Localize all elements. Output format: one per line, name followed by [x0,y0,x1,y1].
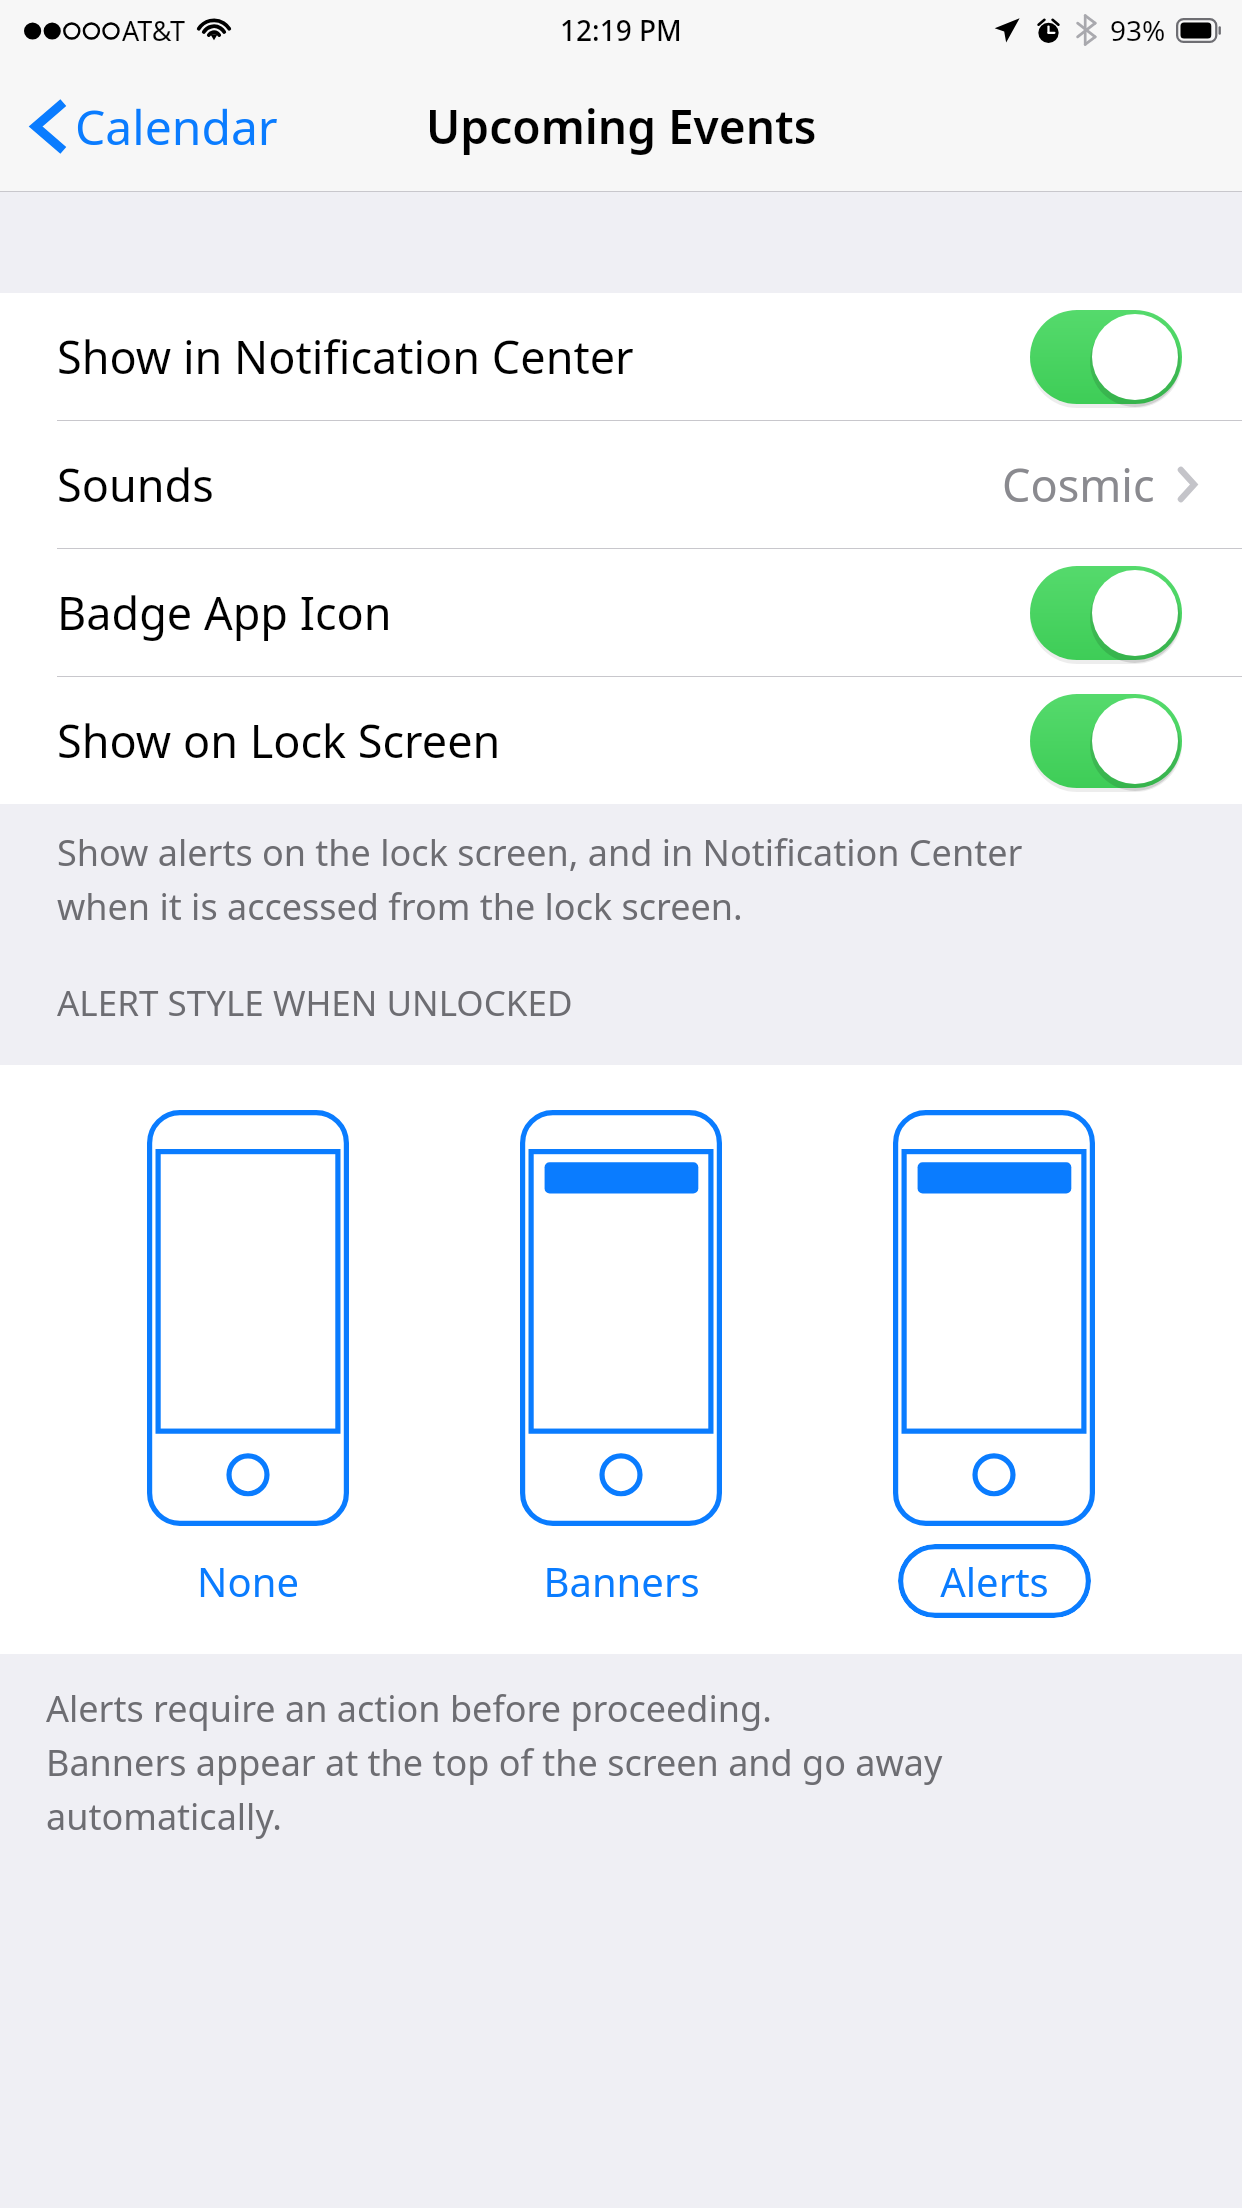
button[interactable]: Alerts [869,1110,1119,1618]
button[interactable]: None [123,1110,373,1618]
staticText: Calendar [75,94,278,159]
button[interactable]: Sounds [0,421,1242,548]
staticText: Show in Notification Center [57,326,1030,387]
staticText: ALERT STYLE WHEN UNLOCKED [57,979,573,1027]
staticText: 93% [1110,11,1166,49]
staticText: Show alerts on the lock screen, and in N… [57,828,1023,931]
button[interactable]: Badge App Icon [0,549,1242,676]
button[interactable]: Toggle on [1030,310,1182,404]
staticText: Badge App Icon [57,582,1030,643]
button[interactable]: Toggle on [1030,694,1182,788]
staticText: 12:19 PM [560,11,682,49]
button[interactable]: Show in Notification Center [0,293,1242,420]
staticText: Upcoming Events [426,95,817,158]
button[interactable]: Toggle on [1030,566,1182,660]
staticText: Show on Lock Screen [57,710,1030,771]
button[interactable]: Banners [496,1110,746,1618]
staticText: Banners [543,1554,700,1608]
staticText: Sounds [57,454,1002,515]
staticText: Cosmic [1002,454,1155,515]
staticText: None [197,1554,299,1608]
button[interactable]: Show on Lock Screen [0,677,1242,804]
staticText: Alerts require an action before proceedi… [46,1684,943,1841]
staticText: Alerts [940,1554,1049,1608]
staticText: AT&T [122,12,185,49]
button[interactable]: Calendar [0,60,304,192]
